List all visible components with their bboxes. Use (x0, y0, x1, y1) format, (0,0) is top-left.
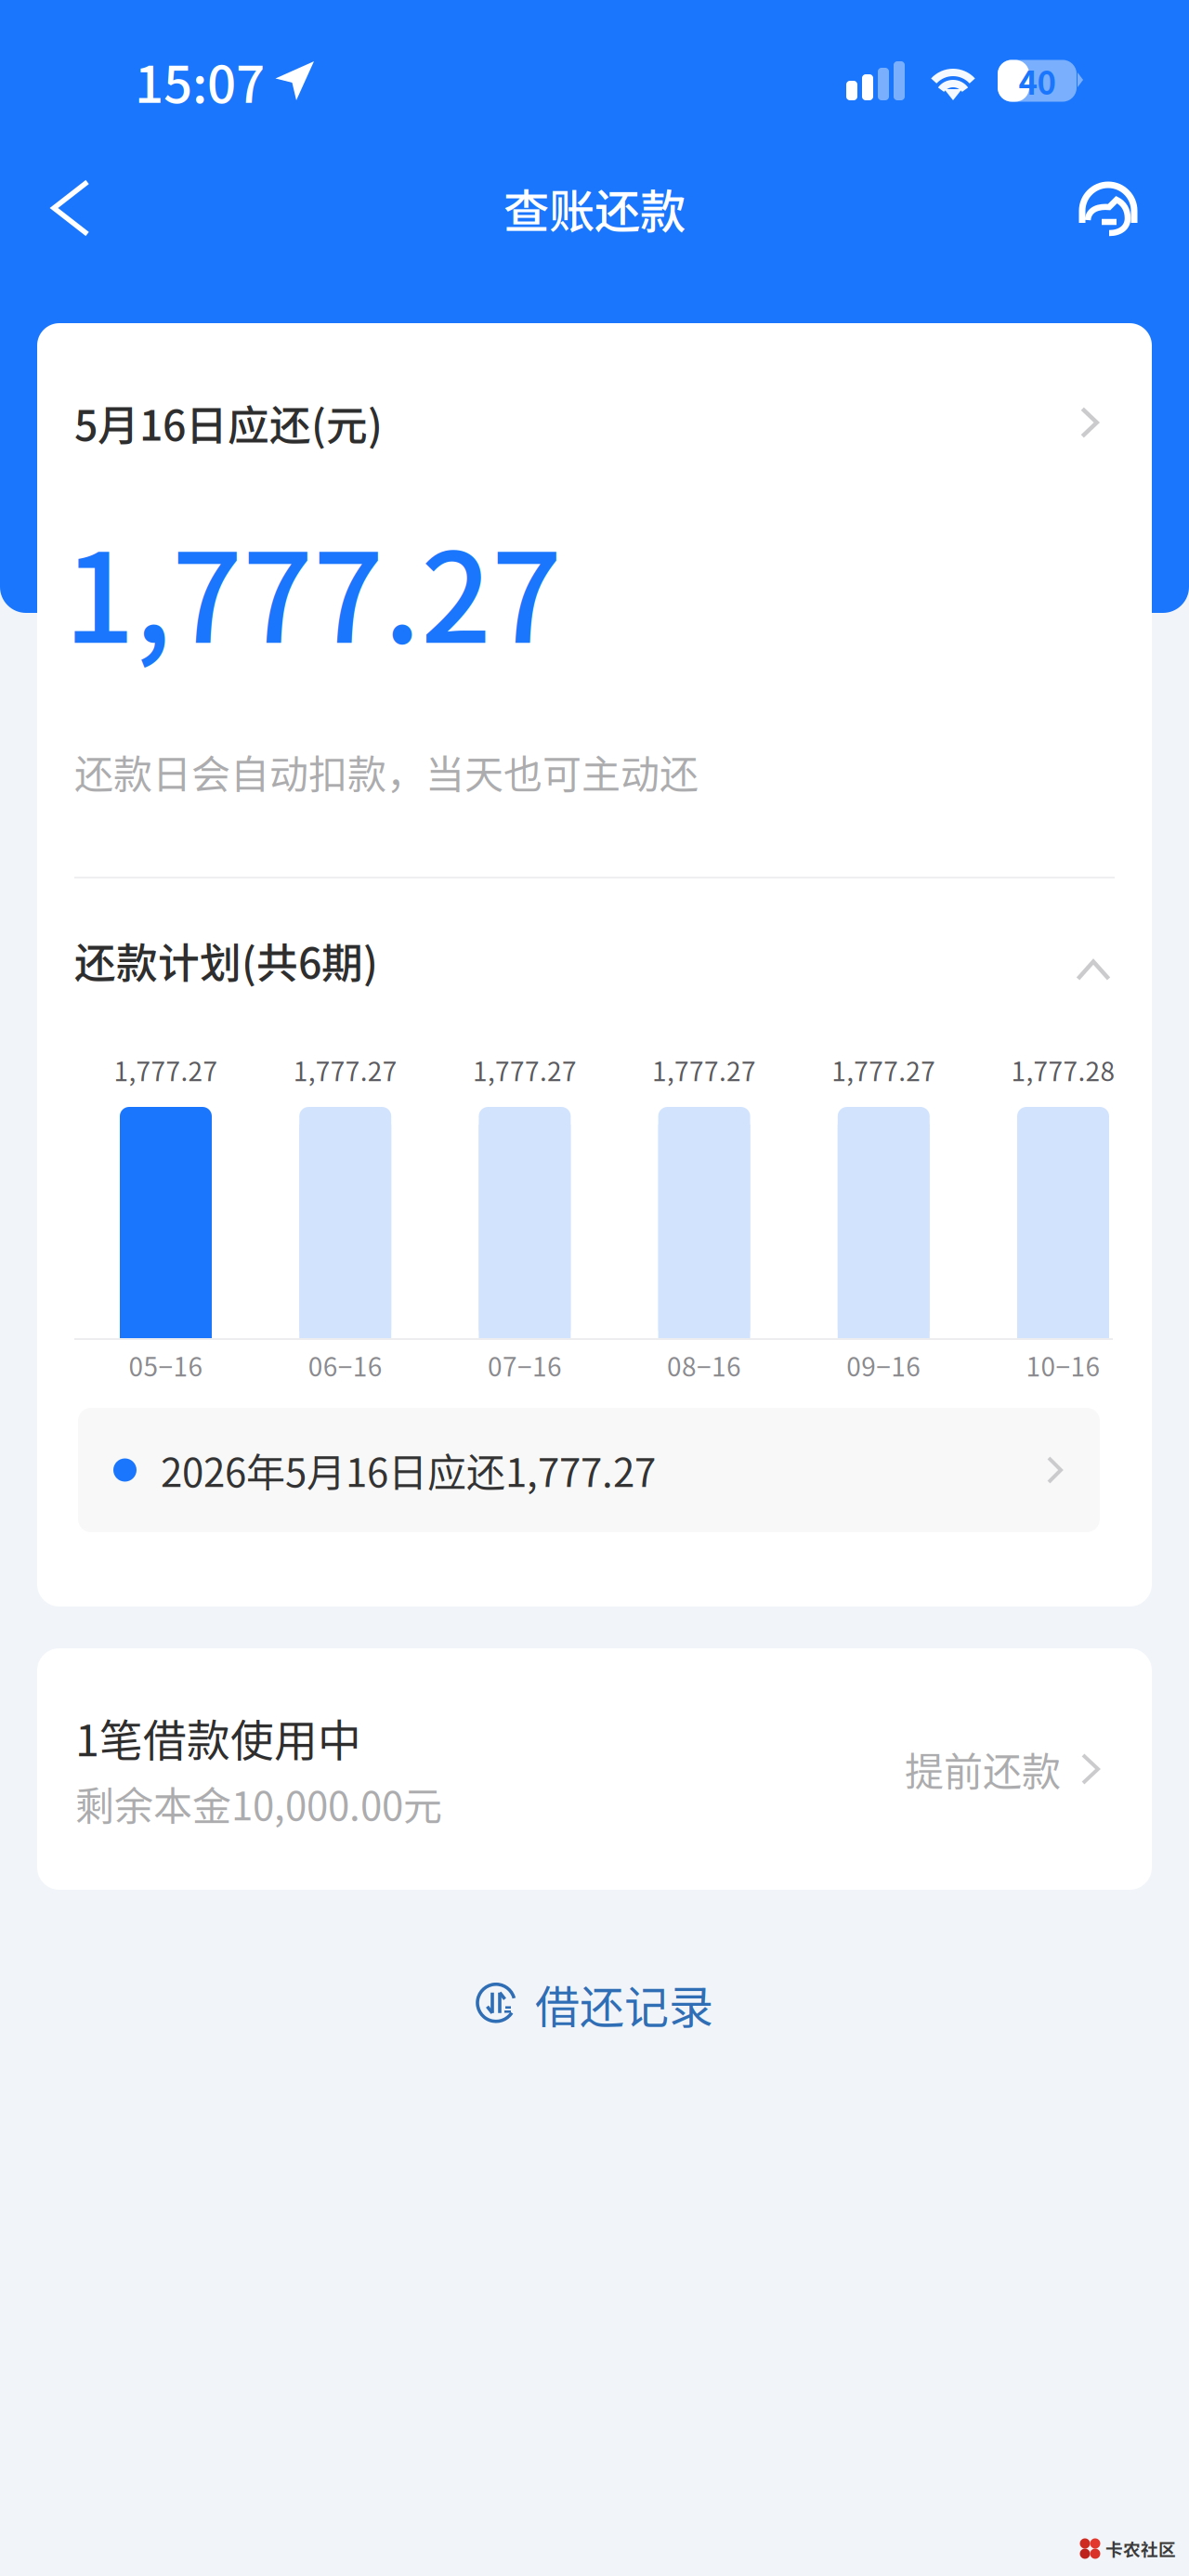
button[interactable]: 1笔借款使用中 (37, 1648, 1152, 1890)
button[interactable]: 在线客服 (1057, 157, 1159, 259)
staticText: 1,777.28 (1011, 1051, 1115, 1089)
staticText: 剩余本金10,000.00元 (75, 1775, 442, 1832)
staticText: 05−16 (129, 1346, 203, 1384)
staticText: 还款计划(共6期) (74, 930, 378, 990)
staticText: 借还记录 (535, 1971, 713, 2036)
staticText: 15:07 (135, 44, 265, 118)
staticText: 1,777.27 (832, 1051, 936, 1089)
button[interactable]: 2026年5月16日应还1,777.27 (78, 1408, 1100, 1532)
staticText: 查账还款 (503, 175, 686, 241)
button[interactable]: 还款计划(共6期) (37, 878, 1152, 1042)
staticText: 40 (1019, 57, 1056, 104)
staticText: 09−16 (847, 1346, 921, 1384)
staticText: 08−16 (667, 1346, 741, 1384)
staticText: 10−16 (1026, 1346, 1100, 1384)
staticText: 07−16 (488, 1346, 562, 1384)
button[interactable]: 5月16日应还(元) (37, 323, 1152, 522)
staticText: 1,777.27 (64, 499, 562, 678)
staticText: 1笔借款使用中 (75, 1706, 361, 1769)
staticText: 06−16 (308, 1346, 382, 1384)
staticText: 5月16日应还(元) (74, 393, 383, 453)
button[interactable]: 返回 (20, 157, 122, 259)
staticText: 提前还款 (905, 1741, 1061, 1797)
staticText: 1,777.27 (293, 1051, 397, 1089)
staticText: 1,777.27 (114, 1051, 218, 1089)
staticText: 1,777.27 (473, 1051, 577, 1089)
staticText: 2026年5月16日应还1,777.27 (161, 1442, 656, 1498)
staticText: 1,777.27 (652, 1051, 756, 1089)
button[interactable]: 借还记录 (453, 1960, 736, 2047)
staticText: 还款日会自动扣款，当天也可主动还 (74, 743, 699, 800)
staticText: 卡农社区 (1105, 2536, 1176, 2561)
